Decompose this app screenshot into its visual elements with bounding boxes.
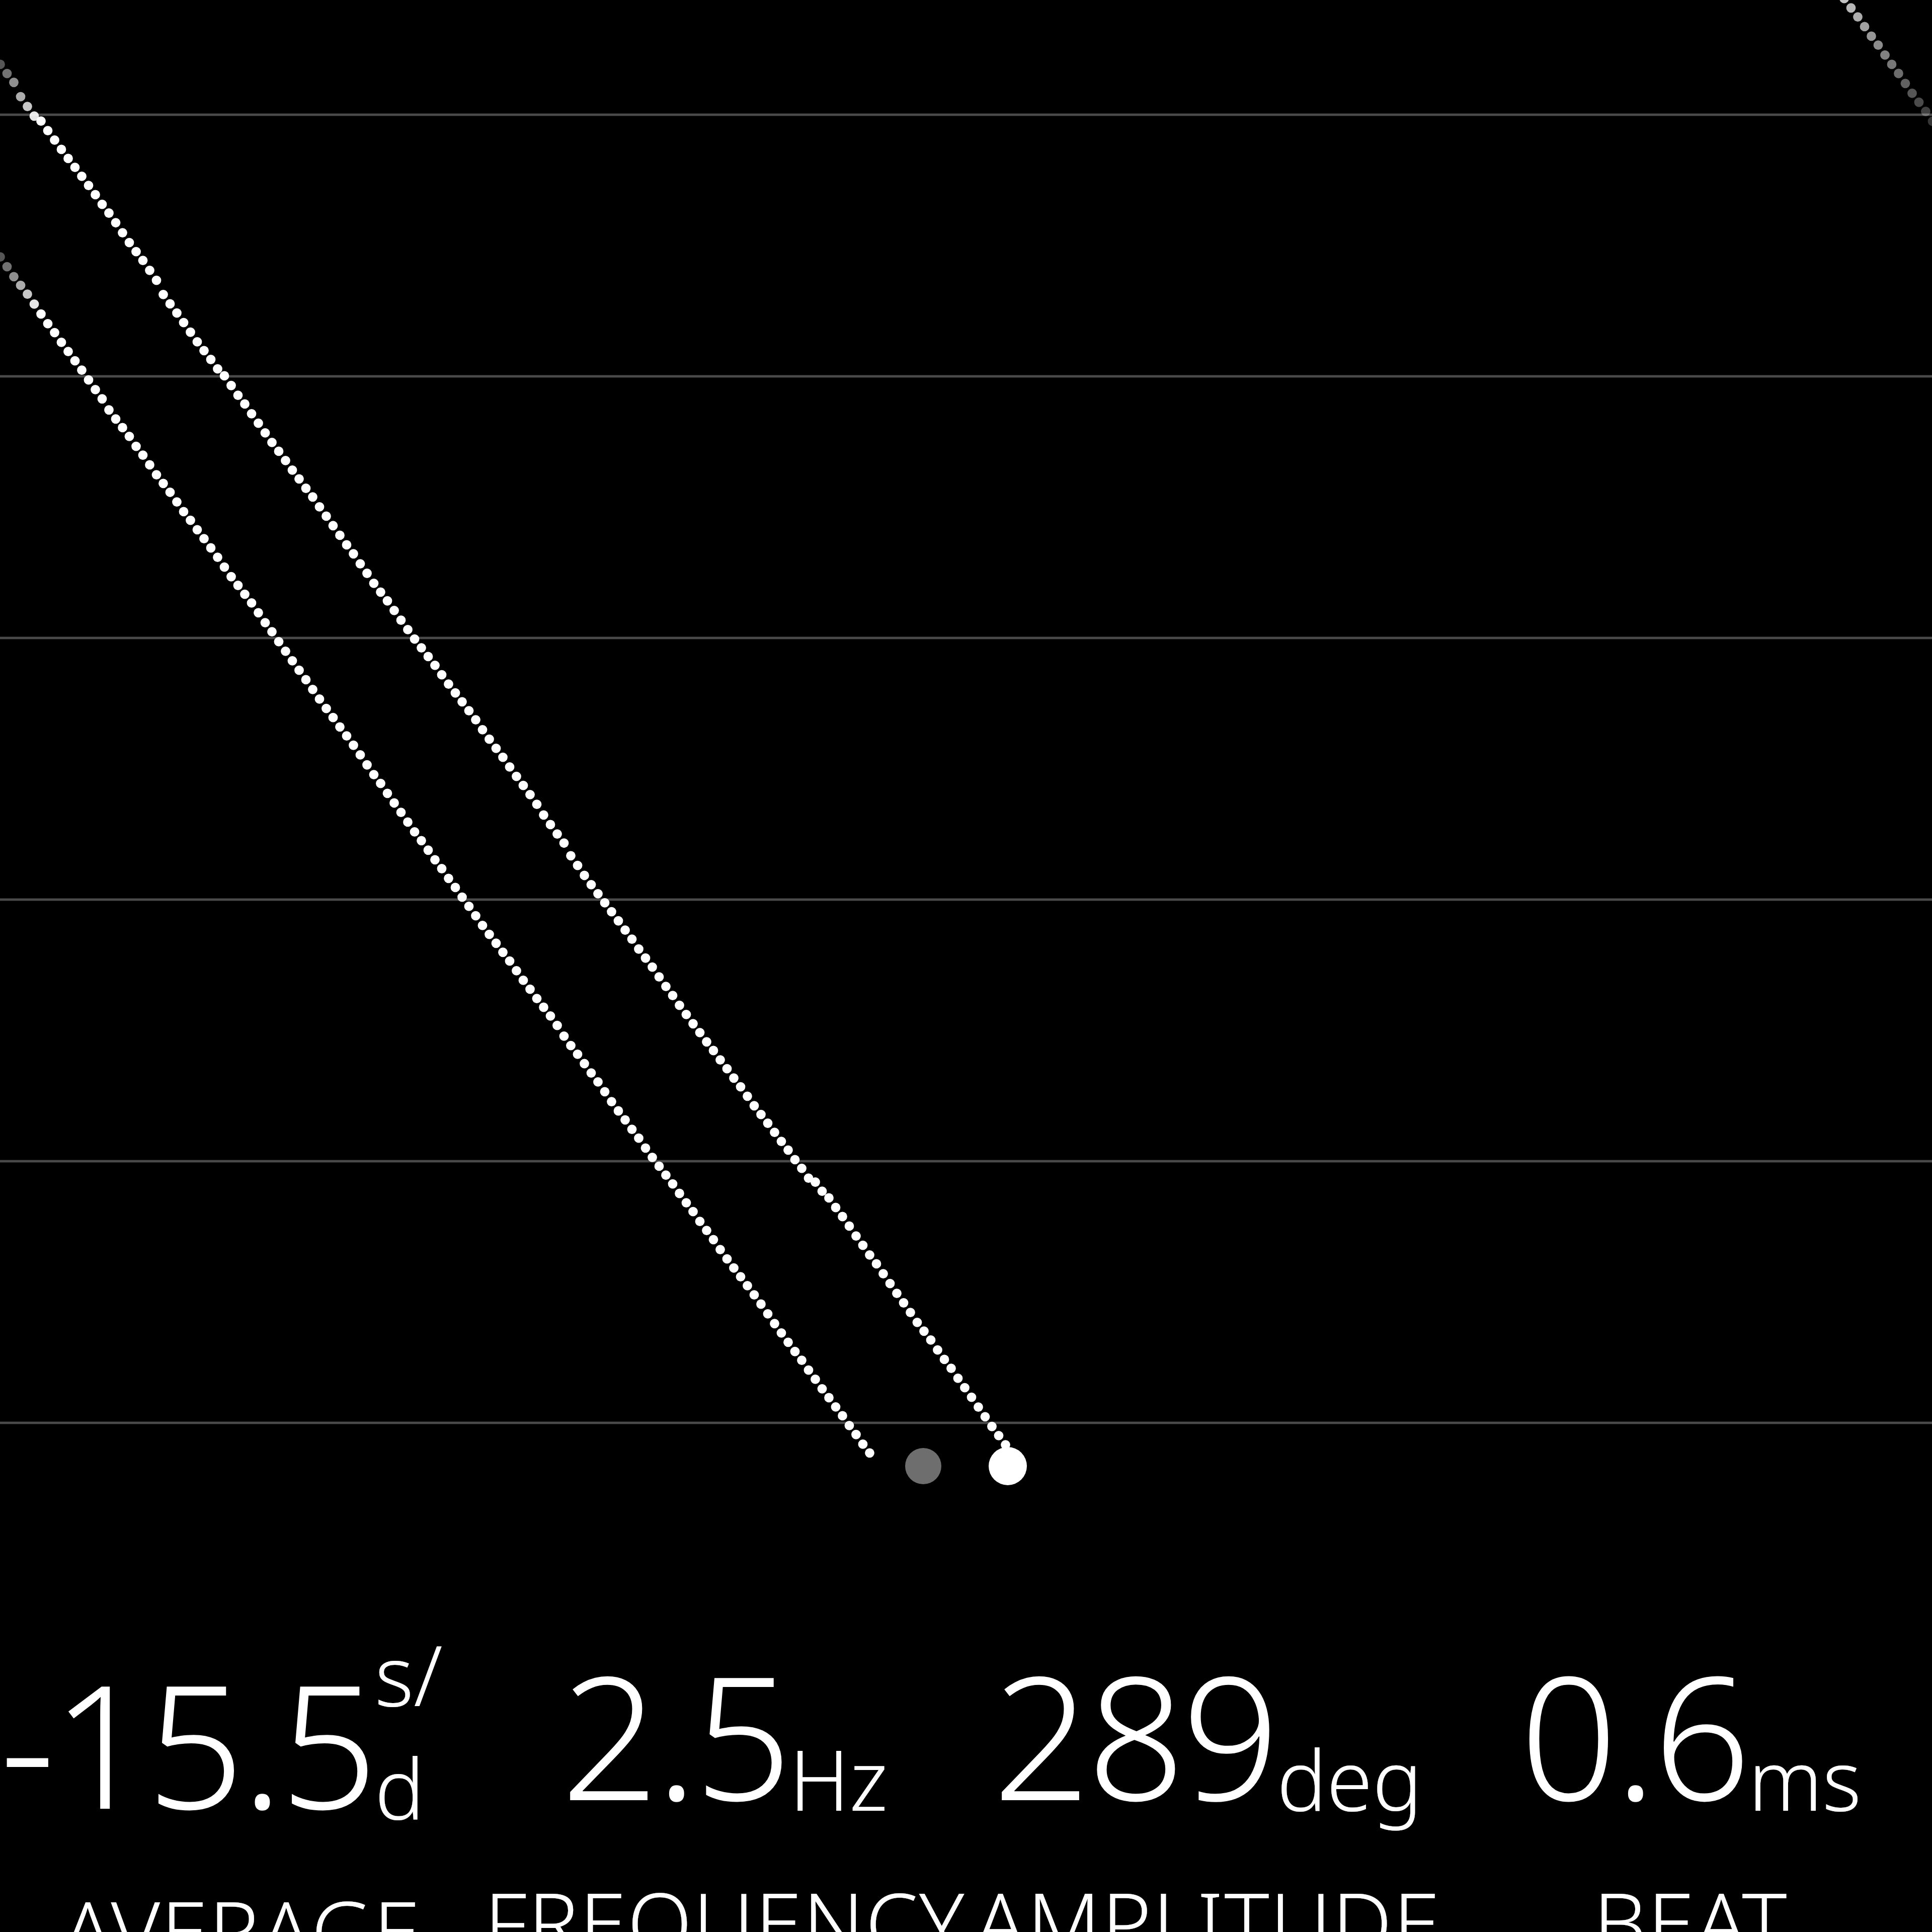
- staticText: Hz: [789, 1722, 888, 1835]
- staticText: -15.5: [0, 1626, 375, 1859]
- staticText: s/d: [375, 1618, 483, 1844]
- staticText: 0.6: [1520, 1618, 1748, 1850]
- button[interactable]: -15.5: [0, 1618, 483, 1932]
- staticText: 289: [993, 1618, 1277, 1850]
- staticText: AVERAGE: [62, 1872, 421, 1932]
- staticText: ms: [1748, 1722, 1862, 1835]
- staticText: AMPLITUDE: [975, 1864, 1441, 1932]
- staticText: FREQUENCY: [484, 1864, 965, 1932]
- staticText: deg: [1277, 1722, 1422, 1835]
- button[interactable]: Page 2 of 2: [890, 1439, 1042, 1493]
- staticText: BEAT ERROR: [1449, 1864, 1932, 1932]
- button[interactable]: Rate trace graph: [0, 0, 1932, 1449]
- button[interactable]: 0.6: [1449, 1618, 1932, 1932]
- button[interactable]: 2.5: [483, 1618, 966, 1932]
- staticText: 2.5: [561, 1618, 789, 1850]
- button[interactable]: 289: [966, 1618, 1449, 1932]
